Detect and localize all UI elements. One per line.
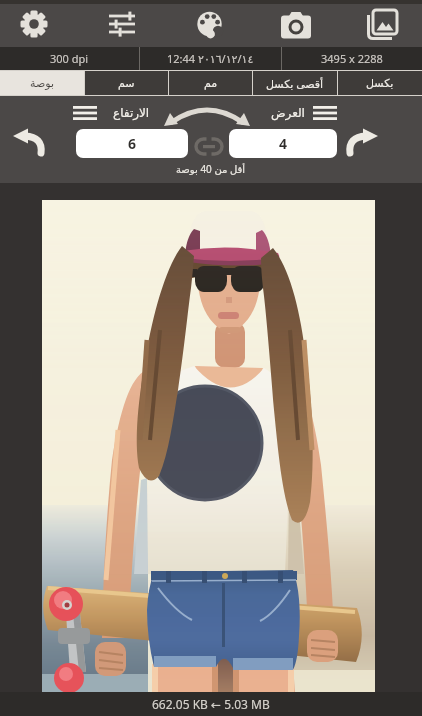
staticText: 6 bbox=[128, 134, 137, 153]
button[interactable] bbox=[344, 122, 384, 162]
staticText: 12:44 ٢٠١٦/١٢/١٤ bbox=[167, 51, 254, 66]
staticText: بوصة bbox=[30, 77, 54, 90]
button[interactable] bbox=[69, 100, 101, 126]
staticText: بكسل bbox=[366, 77, 394, 90]
button[interactable]: بكسل bbox=[338, 71, 422, 95]
button[interactable] bbox=[12, 2, 56, 46]
button[interactable] bbox=[100, 2, 144, 46]
staticText: الارتفاع bbox=[113, 106, 150, 120]
button[interactable]: بوصة bbox=[0, 71, 84, 95]
button[interactable] bbox=[192, 133, 226, 159]
staticText: سم bbox=[118, 77, 135, 90]
button[interactable]: مم bbox=[169, 71, 252, 95]
staticText: 3495 x 2288 bbox=[321, 51, 383, 66]
staticText: أقصى بكسل bbox=[266, 76, 324, 91]
staticText: 4 bbox=[279, 134, 288, 153]
staticText: العرض bbox=[271, 106, 305, 120]
button[interactable] bbox=[274, 2, 318, 46]
staticText: 300 dpi bbox=[50, 51, 89, 66]
staticText: أقل من 40 بوصة bbox=[176, 162, 246, 176]
button[interactable] bbox=[8, 122, 48, 162]
button[interactable]: 6 bbox=[76, 129, 188, 158]
button[interactable]: 4 bbox=[229, 129, 337, 158]
staticText: مم bbox=[204, 77, 218, 90]
button[interactable]: سم bbox=[85, 71, 168, 95]
button[interactable] bbox=[188, 2, 232, 46]
button[interactable]: أقصى بكسل bbox=[253, 71, 337, 95]
button[interactable] bbox=[359, 2, 403, 46]
staticText: 662.05 KB ← 5.03 MB bbox=[152, 696, 270, 712]
button[interactable] bbox=[309, 100, 341, 126]
